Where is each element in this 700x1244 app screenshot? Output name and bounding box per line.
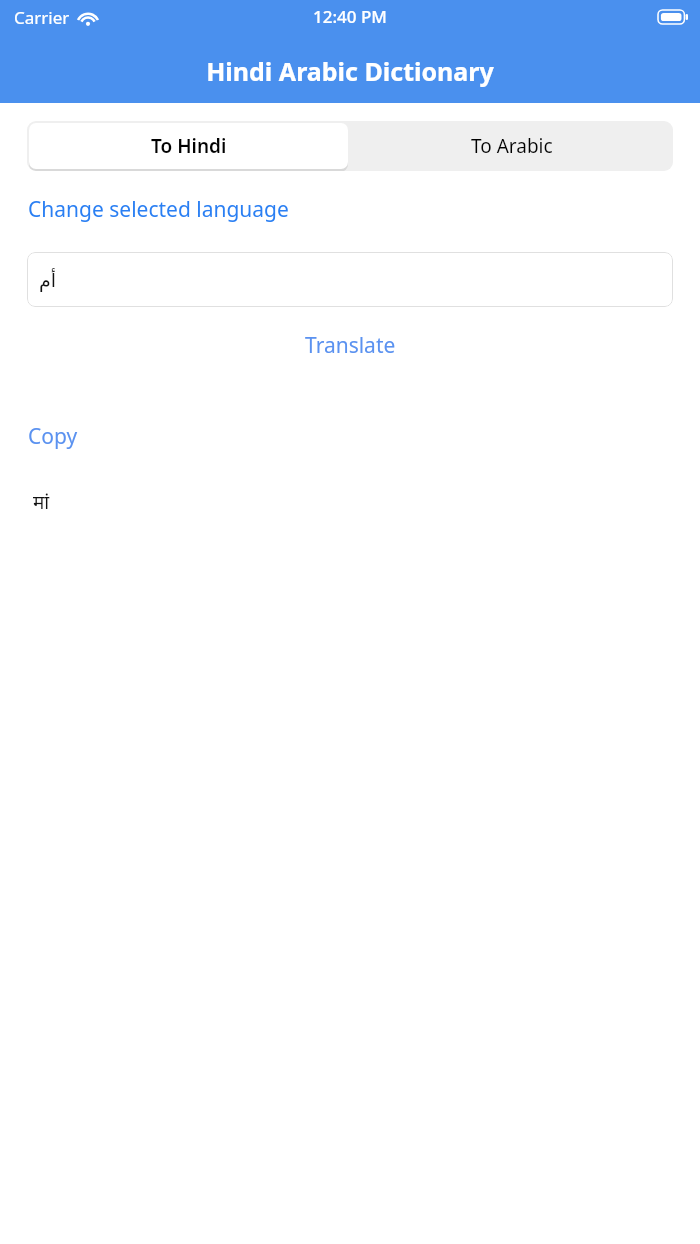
button[interactable]: Copy [28, 422, 78, 451]
staticText: أم [39, 269, 57, 291]
staticText: Hindi Arabic Dictionary [206, 54, 494, 88]
staticText: To Hindi [151, 133, 227, 159]
button[interactable]: Change selected language [28, 195, 289, 224]
other: Battery full [658, 10, 688, 24]
staticText: Carrier [14, 6, 70, 29]
button[interactable]: To Hindi [29, 123, 348, 169]
staticText: To Arabic [471, 133, 553, 159]
staticText: Change selected language [28, 195, 289, 224]
button[interactable]: Translate [305, 331, 396, 360]
button[interactable]: To Arabic [350, 121, 673, 171]
staticText: Copy [28, 422, 78, 451]
staticText: Translate [305, 331, 396, 360]
staticText: 12:40 PM [313, 5, 387, 28]
other: Wi-Fi signal [77, 10, 99, 26]
button[interactable]: أم [27, 252, 673, 307]
staticText: मां [33, 489, 50, 515]
